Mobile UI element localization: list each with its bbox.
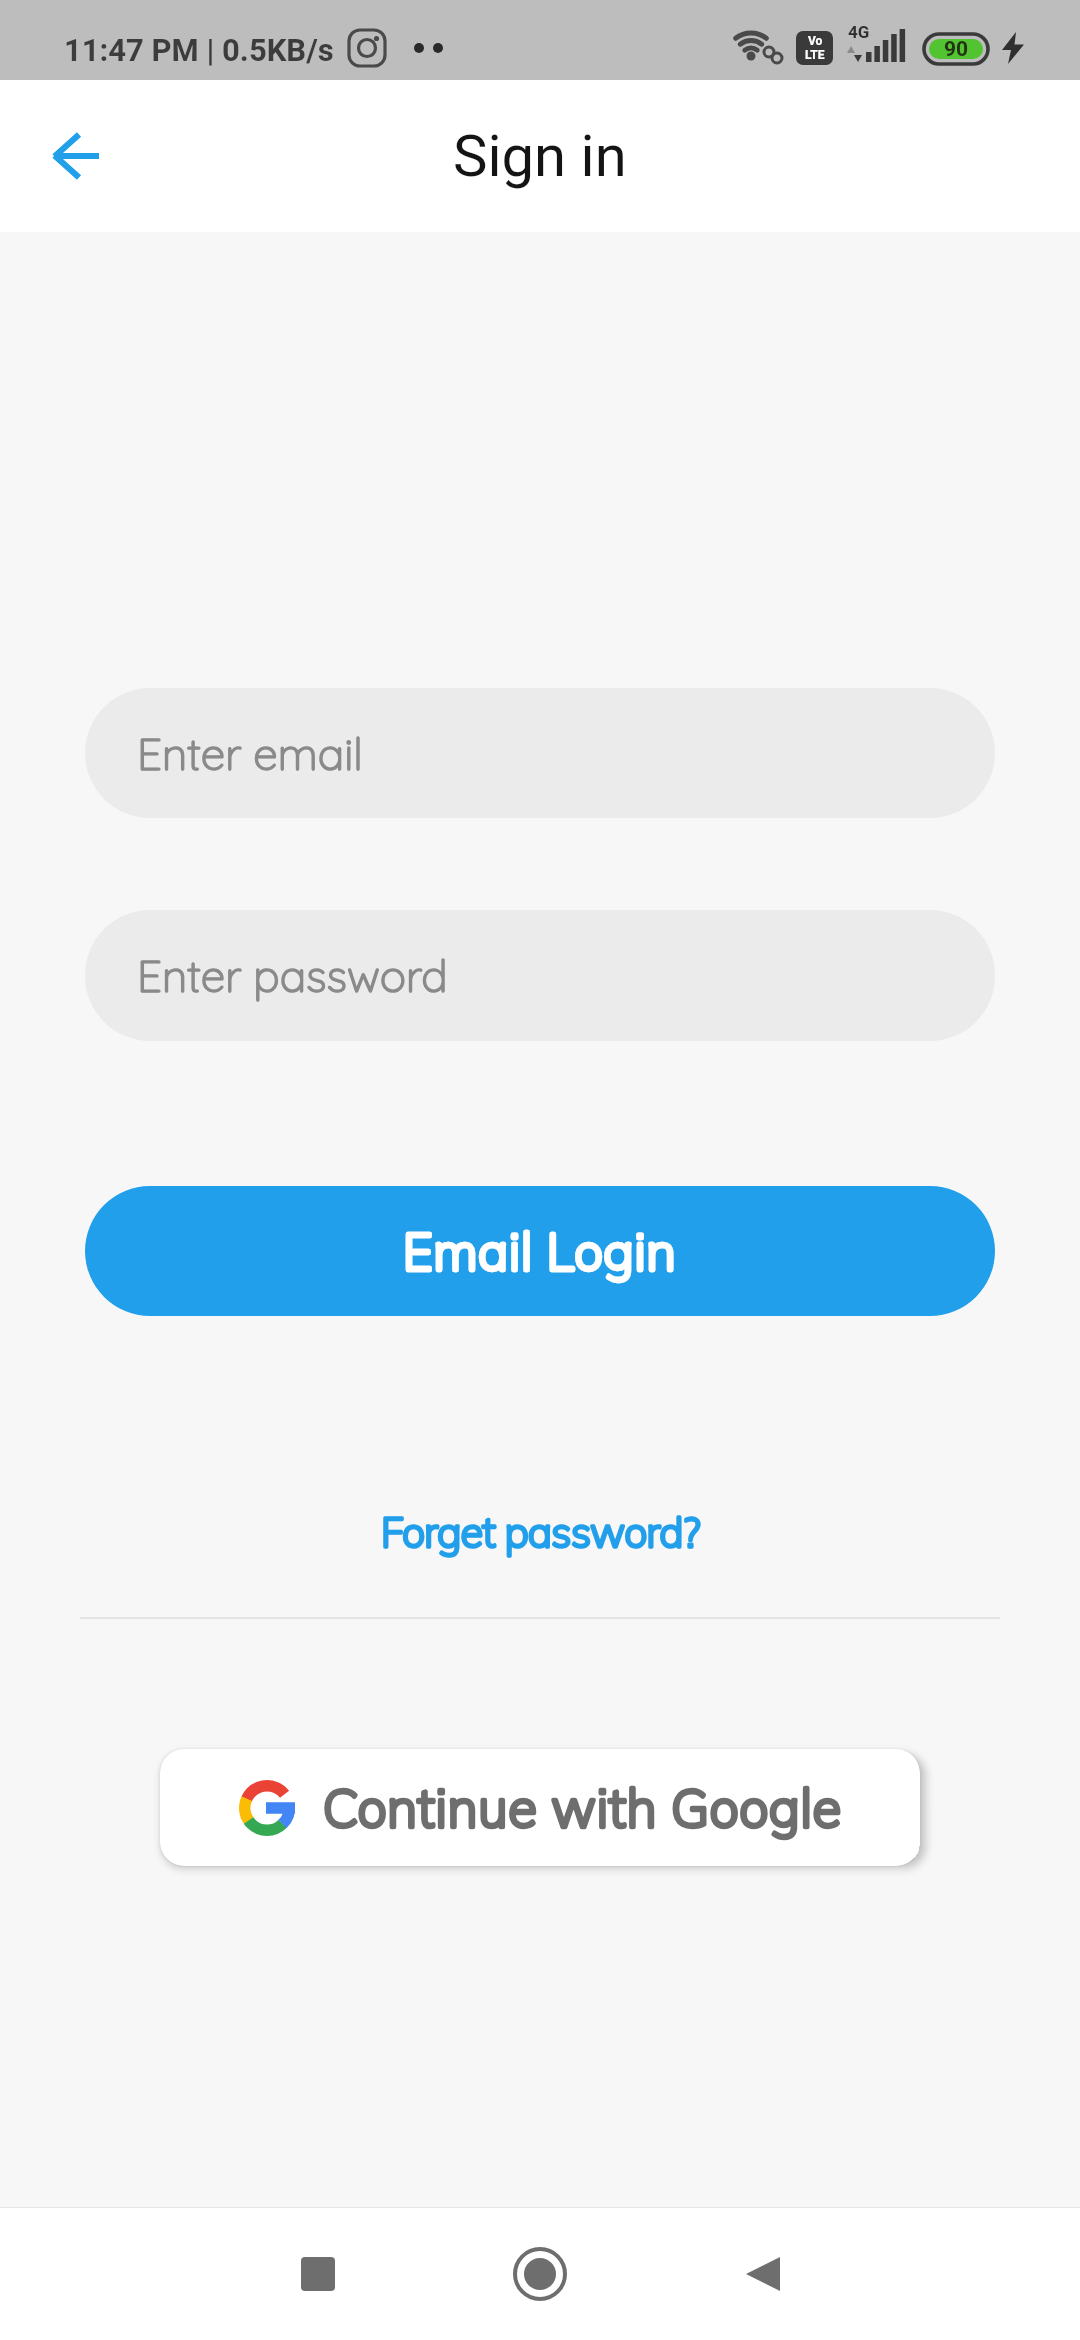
staticText: Email Login (403, 1219, 677, 1283)
button[interactable]: Continue with Google (160, 1749, 920, 1866)
staticText: Enter password (137, 948, 448, 1003)
staticText: 4G (848, 22, 870, 42)
staticText: Enter email (137, 726, 363, 781)
staticText: Forget password? (381, 1506, 700, 1557)
staticText: 90 (944, 37, 969, 62)
button[interactable]: Enter password (85, 910, 995, 1041)
staticText: Sign in (453, 122, 627, 190)
staticText: Continue with Google (323, 1775, 842, 1840)
staticText: Email Login (403, 1219, 677, 1283)
staticText: 11:47 PM | 0.5KB/s (64, 32, 334, 68)
button[interactable] (722, 2234, 802, 2314)
button[interactable]: Enter email (85, 688, 995, 818)
button[interactable] (500, 2234, 580, 2314)
button[interactable] (42, 121, 112, 191)
button[interactable] (278, 2234, 358, 2314)
staticText: Continue with Google (323, 1775, 842, 1840)
staticText: LTE (805, 48, 825, 62)
staticText: Forget password? (381, 1506, 700, 1557)
staticText: Vo (808, 34, 823, 48)
staticText: Enter email (137, 726, 363, 781)
staticText: Enter password (137, 948, 448, 1003)
button[interactable]: Forget password? (381, 1506, 700, 1557)
button[interactable]: Email Login (85, 1186, 995, 1316)
